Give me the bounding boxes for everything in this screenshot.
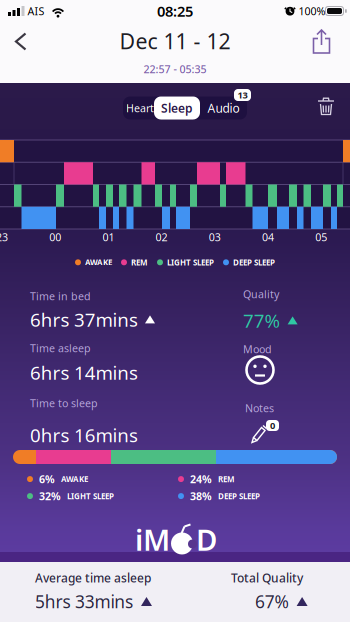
staticText: 6hrs 37mins [30,307,138,332]
staticText: Total Quality [231,570,303,586]
staticText: 32% [39,489,61,503]
button[interactable]: Audio [200,96,247,119]
staticText: AWAKE [61,474,88,484]
staticText: 23 [0,230,8,244]
staticText: 24% [190,472,212,486]
staticText: Mood [243,342,272,356]
staticText: 6hrs 14mins [30,360,138,385]
staticText: Dec 11 - 12 [119,27,230,55]
button[interactable]: Mood [245,355,274,384]
staticText: 100% [298,4,325,18]
staticText: 03 [209,230,221,244]
staticText: 0 [270,419,275,432]
staticText: LIGHT SLEEP [67,491,114,501]
staticText: 0hrs 16mins [30,422,138,447]
staticText: 38% [190,489,212,503]
button[interactable]: Sleep [154,96,200,119]
staticText: AWAKE [85,257,112,268]
staticText: Average time asleep [35,570,151,586]
staticText: DEEP SLEEP [218,491,260,501]
staticText: DEEP SLEEP [233,257,275,268]
staticText: Notes [245,401,274,415]
staticText: Heart [126,101,154,115]
staticText: D [196,520,217,559]
staticText: 01 [102,230,114,244]
button[interactable]: Back [0,0,40,55]
staticText: 02 [156,230,168,244]
staticText: 5hrs 33mins [35,590,133,613]
button[interactable]: Notes [250,420,280,444]
staticText: Quality [243,287,279,301]
staticText: Audio [207,100,239,116]
staticText: 13 [237,89,247,101]
staticText: 6% [39,472,55,486]
staticText: iM [135,520,170,559]
button[interactable]: Delete [316,97,336,116]
staticText: 77% [243,308,281,333]
staticText: 08:25 [157,1,193,21]
staticText: LIGHT SLEEP [167,257,214,268]
staticText: 05 [315,230,327,244]
staticText: 67% [255,590,289,613]
button[interactable]: Heart [123,96,157,119]
staticText: 00 [49,230,61,244]
button[interactable]: Share [0,0,350,55]
staticText: Time asleep [30,341,91,355]
staticText: Time to sleep [30,396,98,410]
staticText: Time in bed [30,289,91,303]
staticText: REM [131,257,148,268]
staticText: AIS [27,4,44,18]
staticText: REM [218,474,235,484]
staticText: Sleep [161,100,193,116]
staticText: 22:57 - 05:35 [143,62,206,76]
staticText: 04 [262,230,274,244]
